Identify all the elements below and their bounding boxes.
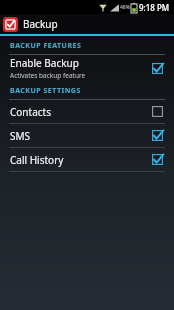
button[interactable]: Call History checkbox (151, 153, 164, 166)
staticText: 48% (120, 4, 130, 11)
button[interactable]: Enable Backup checkbox (151, 62, 164, 75)
staticText: BACKUP SETTINGS (10, 86, 81, 96)
button[interactable]: Enable Backup (0, 55, 174, 81)
staticText: Enable Backup (10, 56, 79, 70)
staticText: 9:18 PM (139, 2, 170, 13)
staticText: Backup (23, 17, 58, 31)
button[interactable]: Contacts (0, 100, 174, 123)
button[interactable]: Contacts checkbox (151, 105, 164, 118)
staticText: Contacts (10, 105, 51, 119)
button[interactable]: SMS checkbox (151, 129, 164, 142)
staticText: Call History (10, 153, 64, 167)
staticText: Activates backup feature (10, 71, 86, 80)
button[interactable]: SMS (0, 124, 174, 147)
staticText: BACKUP FEATURES (10, 41, 82, 51)
button[interactable]: Call History (0, 148, 174, 171)
staticText: SMS (10, 129, 31, 143)
